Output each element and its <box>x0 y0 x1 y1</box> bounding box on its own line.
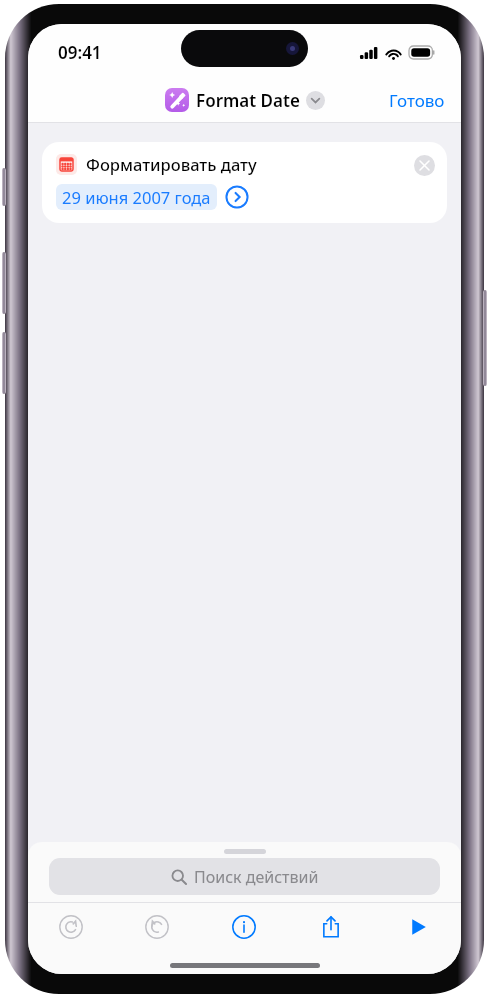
button[interactable]: 29 июня 2007 года <box>56 184 217 210</box>
staticText: Готово <box>389 89 445 112</box>
staticText: Поиск действий <box>194 866 319 888</box>
button[interactable]: Повторить <box>114 903 200 950</box>
staticText: 09:41 <box>58 41 102 64</box>
staticText: Format Date <box>196 89 300 112</box>
staticText: Форматировать дату <box>86 153 257 175</box>
button[interactable]: Format Date <box>163 86 327 114</box>
button[interactable]: Форматировать дату <box>42 142 447 223</box>
button[interactable]: Готово <box>373 83 461 118</box>
staticText: 29 июня 2007 года <box>62 186 211 208</box>
button[interactable]: Отменить <box>28 903 114 950</box>
button[interactable]: Удалить действие <box>414 155 435 176</box>
button[interactable]: Подробнее <box>225 185 249 209</box>
button[interactable]: Поиск действий <box>49 858 440 895</box>
button[interactable]: Запустить <box>374 903 461 950</box>
button[interactable]: Сведения <box>200 903 287 950</box>
button[interactable]: Поделиться <box>287 903 374 950</box>
